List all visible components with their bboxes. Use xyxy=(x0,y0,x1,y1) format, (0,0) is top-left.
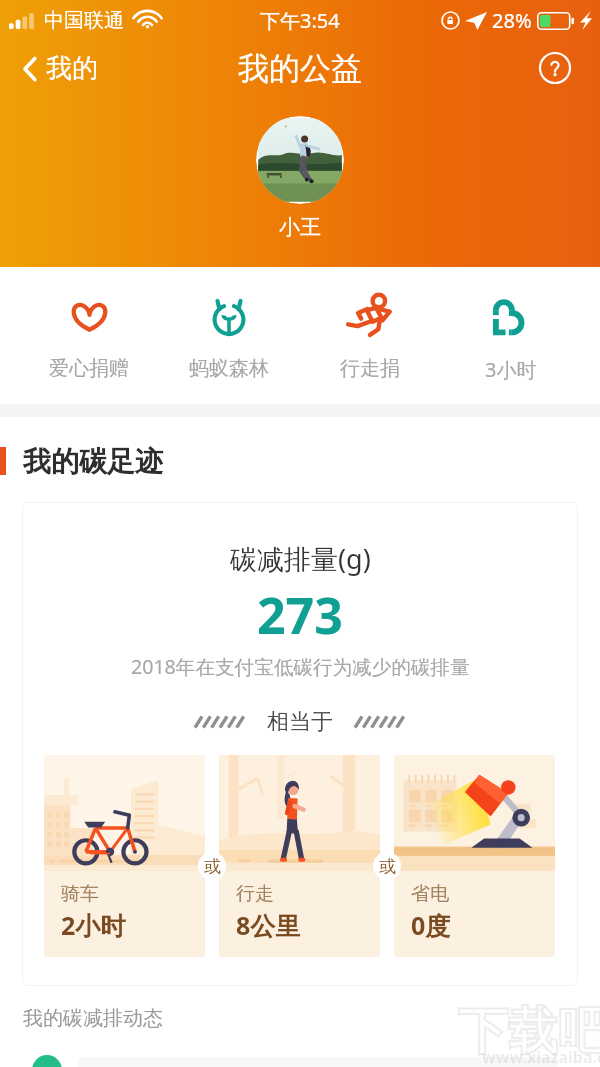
staticText: 3小时 xyxy=(485,356,537,383)
staticText: 相当于 xyxy=(267,708,333,736)
staticText: 碳减排量(g) xyxy=(230,540,371,577)
staticText: 蚂蚁森林 xyxy=(189,356,269,381)
button[interactable]: Help xyxy=(539,52,571,84)
staticText: 我的 xyxy=(46,52,98,85)
staticText: 骑车 xyxy=(61,882,99,906)
staticText: 中国联通 xyxy=(44,8,124,33)
button[interactable]: 蚂蚁森林 xyxy=(159,267,299,404)
staticText: 爱心捐赠 xyxy=(49,356,129,381)
button[interactable]: 爱心捐赠 xyxy=(19,267,159,404)
staticText: 我的碳减排动态 xyxy=(23,1006,163,1031)
button[interactable]: 骑车 xyxy=(44,755,205,957)
staticText: 或 xyxy=(204,856,221,877)
staticText: 下午3:54 xyxy=(260,7,340,34)
staticText: www.xiazaiba.com xyxy=(482,1046,600,1067)
staticText: 8公里 xyxy=(236,908,301,942)
staticText: 我的公益 xyxy=(238,49,362,88)
button[interactable]: Profile photo xyxy=(256,116,344,204)
staticText: 0度 xyxy=(411,908,451,942)
staticText: 小王 xyxy=(279,214,321,240)
staticText: 28% xyxy=(492,7,532,34)
staticText: 省电 xyxy=(411,882,449,906)
staticText: 273 xyxy=(257,581,343,649)
button[interactable]: 行走捐 xyxy=(299,267,440,404)
button[interactable]: 省电 xyxy=(394,755,555,957)
button[interactable]: 行走 xyxy=(219,755,380,957)
button[interactable]: 我的 xyxy=(0,44,114,93)
button[interactable]: 3小时 xyxy=(440,267,581,404)
staticText: 行走 xyxy=(236,882,274,906)
staticText: 行走捐 xyxy=(340,356,400,381)
staticText: 2018年在支付宝低碳行为减少的碳排量 xyxy=(131,653,470,680)
staticText: 我的碳足迹 xyxy=(23,444,163,479)
staticText: 2小时 xyxy=(61,908,126,942)
staticText: 下载吧 xyxy=(458,1000,600,1063)
staticText: 或 xyxy=(379,856,396,877)
